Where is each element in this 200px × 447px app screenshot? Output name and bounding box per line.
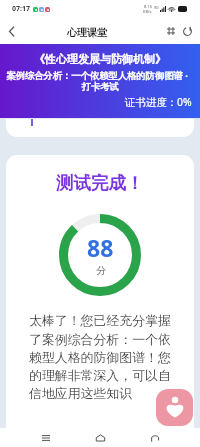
button[interactable]: Refresh: [179, 23, 195, 39]
button[interactable]: Home: [91, 429, 109, 447]
button[interactable]: Back: [0, 20, 22, 42]
staticText: 证书进度：0%: [125, 95, 192, 109]
button[interactable]: Scan: [163, 23, 179, 39]
staticText: KB/s: [143, 9, 152, 14]
button[interactable]: [6, 119, 194, 137]
staticText: 分: [96, 264, 106, 277]
staticText: 88: [87, 232, 114, 263]
staticText: 《性心理发展与防御机制》: [34, 52, 166, 66]
staticText: 太棒了！您已经充分掌握了案例综合分析：一个依赖型人格的防御图谱！您的理解非常深入…: [29, 313, 173, 401]
staticText: 心理课堂: [67, 26, 107, 39]
staticText: 打卡考试: [81, 81, 119, 93]
staticText: 案例综合分析：一个依赖型人格的防御图谱 ·: [6, 69, 188, 82]
staticText: 测试完成！: [56, 172, 144, 194]
staticText: 90: [154, 5, 159, 10]
button[interactable]: Recent apps: [37, 429, 55, 447]
button[interactable]: Assistant: [156, 389, 193, 426]
staticText: 8.16: [144, 4, 152, 9]
button[interactable]: Back: [146, 429, 164, 447]
staticText: 07:17: [12, 4, 30, 14]
